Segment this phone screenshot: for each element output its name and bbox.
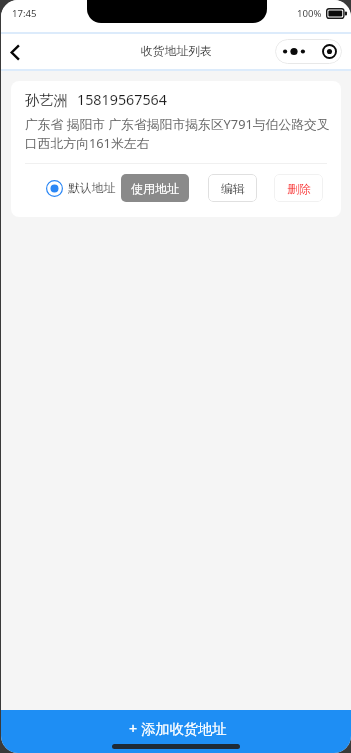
- staticText: 17:45: [12, 7, 37, 20]
- staticText: 删除: [287, 181, 311, 196]
- button[interactable]: 删除: [274, 174, 323, 202]
- button[interactable]: More menu: [275, 39, 311, 64]
- button[interactable]: 使用地址: [121, 174, 189, 202]
- staticText: 广东省 揭阳市 广东省揭阳市揭东区Y791与伯公路交叉口西北方向161米左右: [25, 115, 335, 152]
- button[interactable]: + 添加收货地址: [1, 710, 351, 753]
- button[interactable]: 默认地址: [46, 180, 116, 197]
- staticText: 孙艺洲: [25, 91, 68, 109]
- staticText: 收货地址列表: [141, 44, 212, 59]
- staticText: 编辑: [221, 181, 245, 196]
- staticText: 100%: [297, 7, 322, 20]
- staticText: + 添加收货地址: [129, 719, 227, 739]
- button[interactable]: Back: [1, 34, 39, 69]
- staticText: 15819567564: [77, 90, 167, 109]
- button[interactable]: 编辑: [208, 174, 257, 202]
- staticText: 默认地址: [68, 181, 116, 196]
- button[interactable]: 孙艺洲: [11, 81, 341, 217]
- staticText: 使用地址: [131, 181, 179, 196]
- button[interactable]: Close mini program: [311, 39, 342, 64]
